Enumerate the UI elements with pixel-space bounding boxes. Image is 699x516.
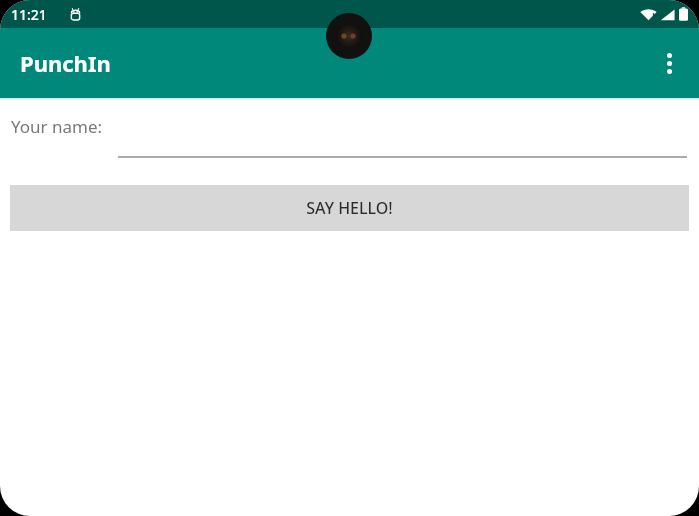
button[interactable]: More options [646, 40, 692, 86]
staticText: SAY HELLO! [306, 197, 393, 219]
staticText: 11:21 [11, 5, 47, 24]
staticText: Your name: [11, 115, 103, 138]
button[interactable]: SAY HELLO! [10, 185, 689, 231]
staticText: PunchIn [20, 48, 111, 78]
